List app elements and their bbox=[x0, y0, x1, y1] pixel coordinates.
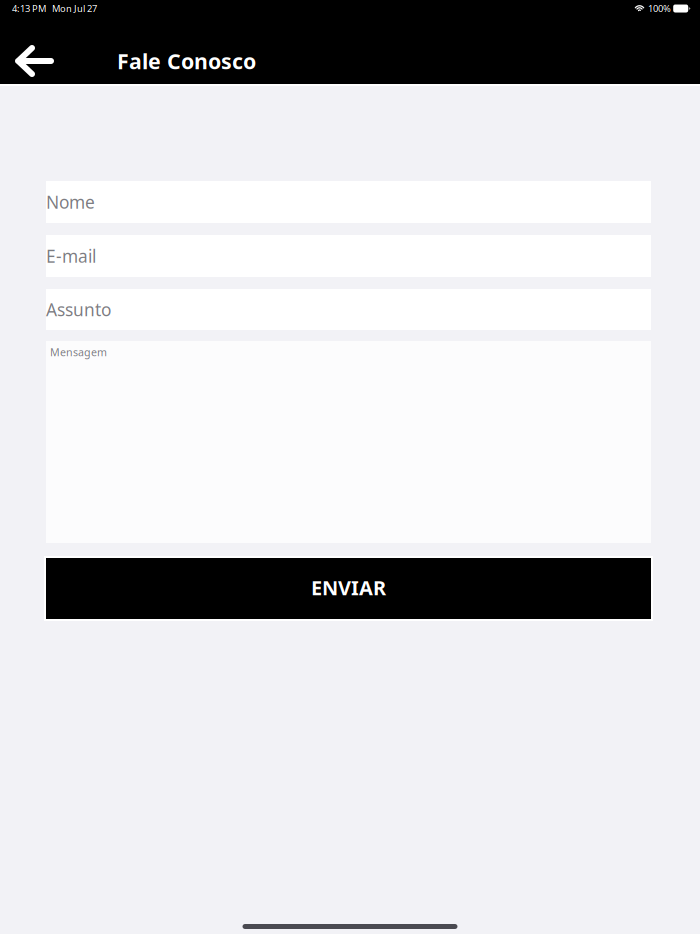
staticText: 100% bbox=[648, 2, 671, 15]
staticText: ENVIAR bbox=[311, 574, 386, 601]
button[interactable]: E-mail bbox=[46, 235, 651, 277]
staticText: Assunto bbox=[46, 298, 111, 321]
staticText: E-mail bbox=[46, 244, 96, 267]
button[interactable]: Assunto bbox=[46, 289, 651, 330]
staticText: Mensagem bbox=[50, 345, 107, 359]
button[interactable]: Nome bbox=[46, 181, 651, 223]
staticText: Fale Conosco bbox=[117, 47, 256, 75]
staticText: 4:13 PM bbox=[12, 2, 46, 15]
button[interactable]: ENVIAR bbox=[44, 556, 653, 621]
staticText: Mon Jul 27 bbox=[52, 2, 97, 15]
staticText: Nome bbox=[46, 190, 95, 213]
button[interactable]: Mensagem bbox=[46, 341, 651, 543]
button[interactable]: Back bbox=[0, 45, 117, 77]
